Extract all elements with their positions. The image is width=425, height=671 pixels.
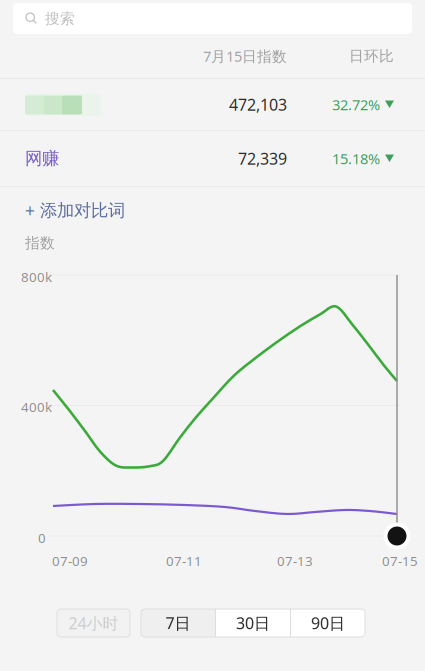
- staticText: 日环比: [349, 47, 394, 65]
- staticText: 32.72%: [332, 95, 380, 114]
- button[interactable]: 24小时: [57, 609, 130, 637]
- button[interactable]: 7日: [141, 609, 215, 637]
- staticText: 800k: [21, 268, 52, 286]
- button[interactable]: 472,103: [0, 79, 425, 130]
- staticText: 网赚: [25, 148, 59, 169]
- staticText: 指数: [25, 234, 55, 252]
- button[interactable]: 网赚: [0, 131, 425, 186]
- staticText: 24小时: [68, 612, 118, 634]
- staticText: 7月15日指数: [203, 46, 287, 66]
- staticText: 7日: [165, 612, 190, 634]
- staticText: 0: [38, 529, 46, 547]
- staticText: 15.18%: [332, 149, 380, 168]
- staticText: 07-09: [52, 552, 88, 570]
- staticText: +: [25, 199, 35, 222]
- staticText: 30日: [236, 612, 270, 634]
- staticText: 472,103: [229, 94, 287, 115]
- button[interactable]: 30日: [216, 609, 290, 637]
- staticText: 400k: [21, 398, 52, 416]
- staticText: 搜索: [45, 9, 75, 27]
- staticText: 07-15: [382, 552, 418, 570]
- staticText: 07-11: [166, 552, 202, 570]
- button[interactable]: +: [0, 187, 425, 234]
- staticText: 07-13: [277, 552, 313, 570]
- staticText: 添加对比词: [40, 200, 125, 221]
- staticText: 90日: [311, 612, 345, 634]
- staticText: 72,339: [238, 148, 287, 169]
- button[interactable]: 90日: [291, 609, 365, 637]
